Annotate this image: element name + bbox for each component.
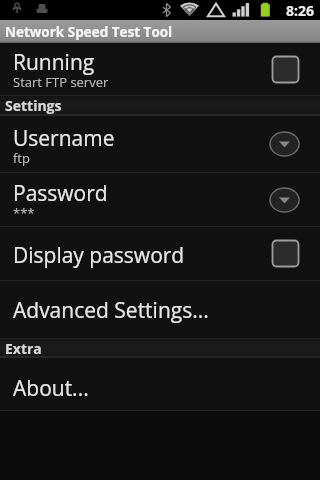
other: Edit [269,187,300,213]
staticText: Username [13,124,115,153]
staticText: Start FTP server [13,73,109,91]
staticText: Password [13,179,108,208]
staticText: Network Speed Test Tool [5,23,173,41]
staticText: About... [13,374,89,403]
other: Edit [269,131,300,157]
staticText: Display password [13,241,185,270]
button[interactable]: Advanced Settings... [0,281,320,338]
staticText: Settings [5,96,62,114]
button[interactable]: About... [0,358,320,410]
button[interactable]: Running [0,43,320,95]
staticText: Extra [5,339,42,356]
button[interactable]: Username [0,116,320,172]
button[interactable]: Display password [0,227,320,280]
other: Toggle [271,55,300,84]
staticText: ftp [13,149,30,167]
staticText: *** [13,204,35,222]
staticText: Running [13,48,95,77]
button[interactable]: Password [0,173,320,226]
other: Toggle [271,239,300,268]
staticText: 8:26 [286,1,315,20]
staticText: Advanced Settings... [13,296,209,325]
